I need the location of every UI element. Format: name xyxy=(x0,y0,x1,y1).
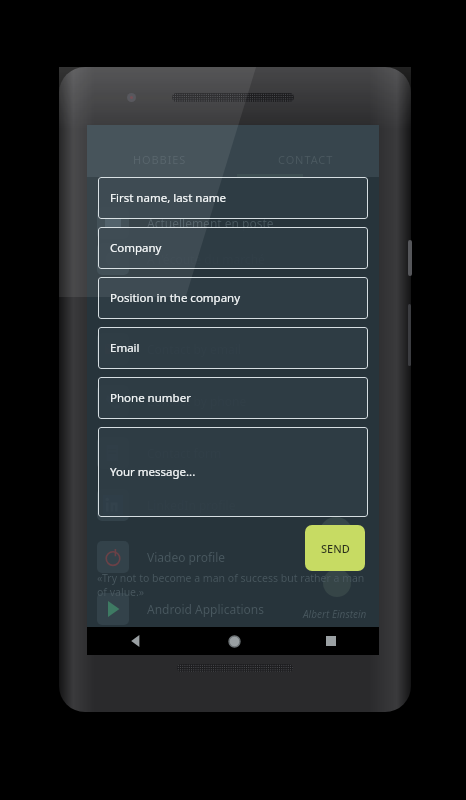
staticText: A l'écoute du marché xyxy=(147,251,265,267)
staticText: Albert Einstein xyxy=(303,607,367,621)
button[interactable]: SEND xyxy=(305,525,365,571)
button[interactable]: A l'écoute du marché xyxy=(87,237,379,281)
button[interactable]: Position in the company xyxy=(98,277,368,319)
button[interactable]: Contact by email xyxy=(87,327,379,371)
staticText: Phone number xyxy=(110,390,191,406)
staticText: SEND xyxy=(321,541,350,556)
staticText: Position in the company xyxy=(110,290,241,306)
staticText: Email xyxy=(110,340,140,356)
button[interactable]: Android Applications xyxy=(87,587,379,631)
button[interactable]: Home xyxy=(221,628,247,654)
button[interactable]: Contact by phone xyxy=(87,379,379,423)
staticText: Company xyxy=(110,240,162,256)
staticText: Actuellement en poste xyxy=(147,215,274,231)
button[interactable]: Phone number xyxy=(98,377,368,419)
staticText: CONTACT xyxy=(278,152,334,167)
button[interactable]: Actuellement en poste xyxy=(87,201,379,245)
button[interactable]: Recent apps xyxy=(318,628,344,654)
button[interactable]: Contact form xyxy=(87,431,379,475)
staticText: Contact by phone xyxy=(147,393,247,409)
staticText: «Try not to become a man of success but … xyxy=(97,571,367,599)
button[interactable]: Back xyxy=(123,628,149,654)
staticText: Viadeo profile xyxy=(147,549,226,565)
button[interactable]: Company xyxy=(98,227,368,269)
button[interactable]: Email xyxy=(98,327,368,369)
button[interactable]: First name, last name xyxy=(98,177,368,219)
staticText: First name, last name xyxy=(110,190,227,206)
staticText: Android Applications xyxy=(147,601,265,617)
button[interactable]: Viadeo profile xyxy=(87,535,379,579)
staticText: Your message... xyxy=(110,464,196,480)
button[interactable]: LinkedIn profile xyxy=(87,483,379,527)
button[interactable]: Your message... xyxy=(98,427,368,517)
staticText: HOBBIES xyxy=(133,152,187,167)
